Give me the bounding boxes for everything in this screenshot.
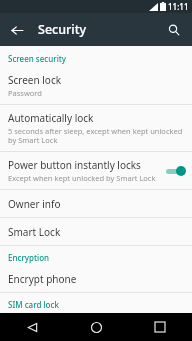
button[interactable]: Encrypt phone <box>0 266 192 292</box>
staticText: Password <box>8 88 42 98</box>
staticText: 11:11 <box>168 1 189 12</box>
staticText: Power button instantly locks <box>8 158 141 172</box>
button[interactable]: Smart Lock <box>0 218 192 245</box>
button[interactable]: Owner info <box>0 190 192 217</box>
button[interactable]: Screen lock <box>0 67 192 104</box>
button[interactable]: Power button instantly locks toggle <box>164 164 186 178</box>
button[interactable]: Recent apps <box>128 313 192 341</box>
staticText: Screen lock <box>8 73 62 87</box>
staticText: SIM card lock <box>8 299 184 310</box>
button[interactable]: Back <box>0 313 64 341</box>
button[interactable]: Search <box>161 17 187 43</box>
staticText: Encrypt phone <box>8 272 77 286</box>
staticText: Encryption <box>8 252 184 263</box>
button[interactable]: Home <box>64 313 128 341</box>
staticText: Automatically lock <box>8 111 94 125</box>
button[interactable]: Navigate up <box>4 17 30 43</box>
staticText: Except when kept unlocked by Smart Lock <box>8 173 156 183</box>
staticText: Security <box>38 21 87 38</box>
staticText: Screen security <box>8 53 184 64</box>
staticText: 5 seconds after sleep, except when kept … <box>8 126 184 145</box>
staticText: Owner info <box>8 197 61 211</box>
button[interactable]: Power button instantly locks <box>0 152 192 189</box>
button[interactable]: Automatically lock <box>0 105 192 151</box>
staticText: Smart Lock <box>8 225 61 239</box>
